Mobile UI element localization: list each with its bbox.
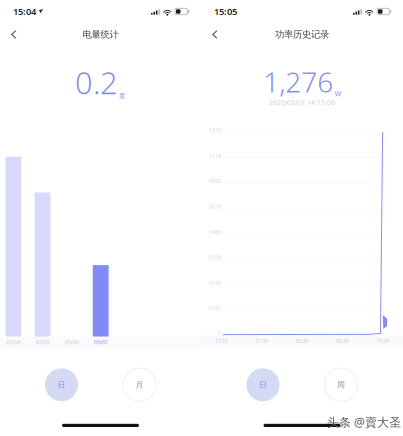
button[interactable]: 日 xyxy=(242,364,284,406)
staticText: 09:30 xyxy=(336,337,349,344)
staticText: 度 xyxy=(119,92,126,100)
staticText: 0 xyxy=(218,330,221,337)
button[interactable]: Back xyxy=(0,25,29,44)
button[interactable]: 月 xyxy=(118,364,160,406)
staticText: 15:04 xyxy=(13,5,36,18)
staticText: 1116 xyxy=(209,152,221,159)
staticText: 21:30 xyxy=(255,337,268,344)
staticText: 15:30 xyxy=(215,337,228,344)
staticText: 0.2 xyxy=(75,62,118,103)
staticText: 0669 xyxy=(209,228,221,235)
staticText: 头条 @賣大圣 xyxy=(327,414,401,430)
staticText: 03/05 xyxy=(36,339,50,346)
staticText: W xyxy=(335,89,341,98)
staticText: 2020/03/07 14:15:00 xyxy=(269,98,335,107)
staticText: 0982 xyxy=(209,177,221,185)
staticText: 03/07 xyxy=(94,339,108,346)
staticText: 03:30 xyxy=(295,337,308,344)
staticText: 0358 xyxy=(209,279,221,286)
staticText: 电量统计 xyxy=(82,29,118,40)
staticText: 03/04 xyxy=(6,339,20,346)
staticText: 03/06 xyxy=(65,339,79,346)
staticText: 1276 xyxy=(209,127,221,134)
staticText: 15:30 xyxy=(376,337,389,344)
staticText: 15:05 xyxy=(214,5,237,18)
staticText: 0839 xyxy=(209,203,221,210)
button[interactable]: Back xyxy=(201,25,230,44)
staticText: 1,276 xyxy=(263,63,333,100)
button[interactable]: 周 xyxy=(320,364,362,406)
staticText: 0554 xyxy=(209,254,221,261)
staticText: 功率历史记录 xyxy=(275,29,329,40)
staticText: 0167 xyxy=(209,304,221,312)
button[interactable]: 日 xyxy=(40,364,82,406)
staticText: 周 xyxy=(337,380,345,390)
staticText: 日 xyxy=(57,380,65,390)
staticText: 月 xyxy=(135,380,143,390)
staticText: 日 xyxy=(259,380,267,390)
